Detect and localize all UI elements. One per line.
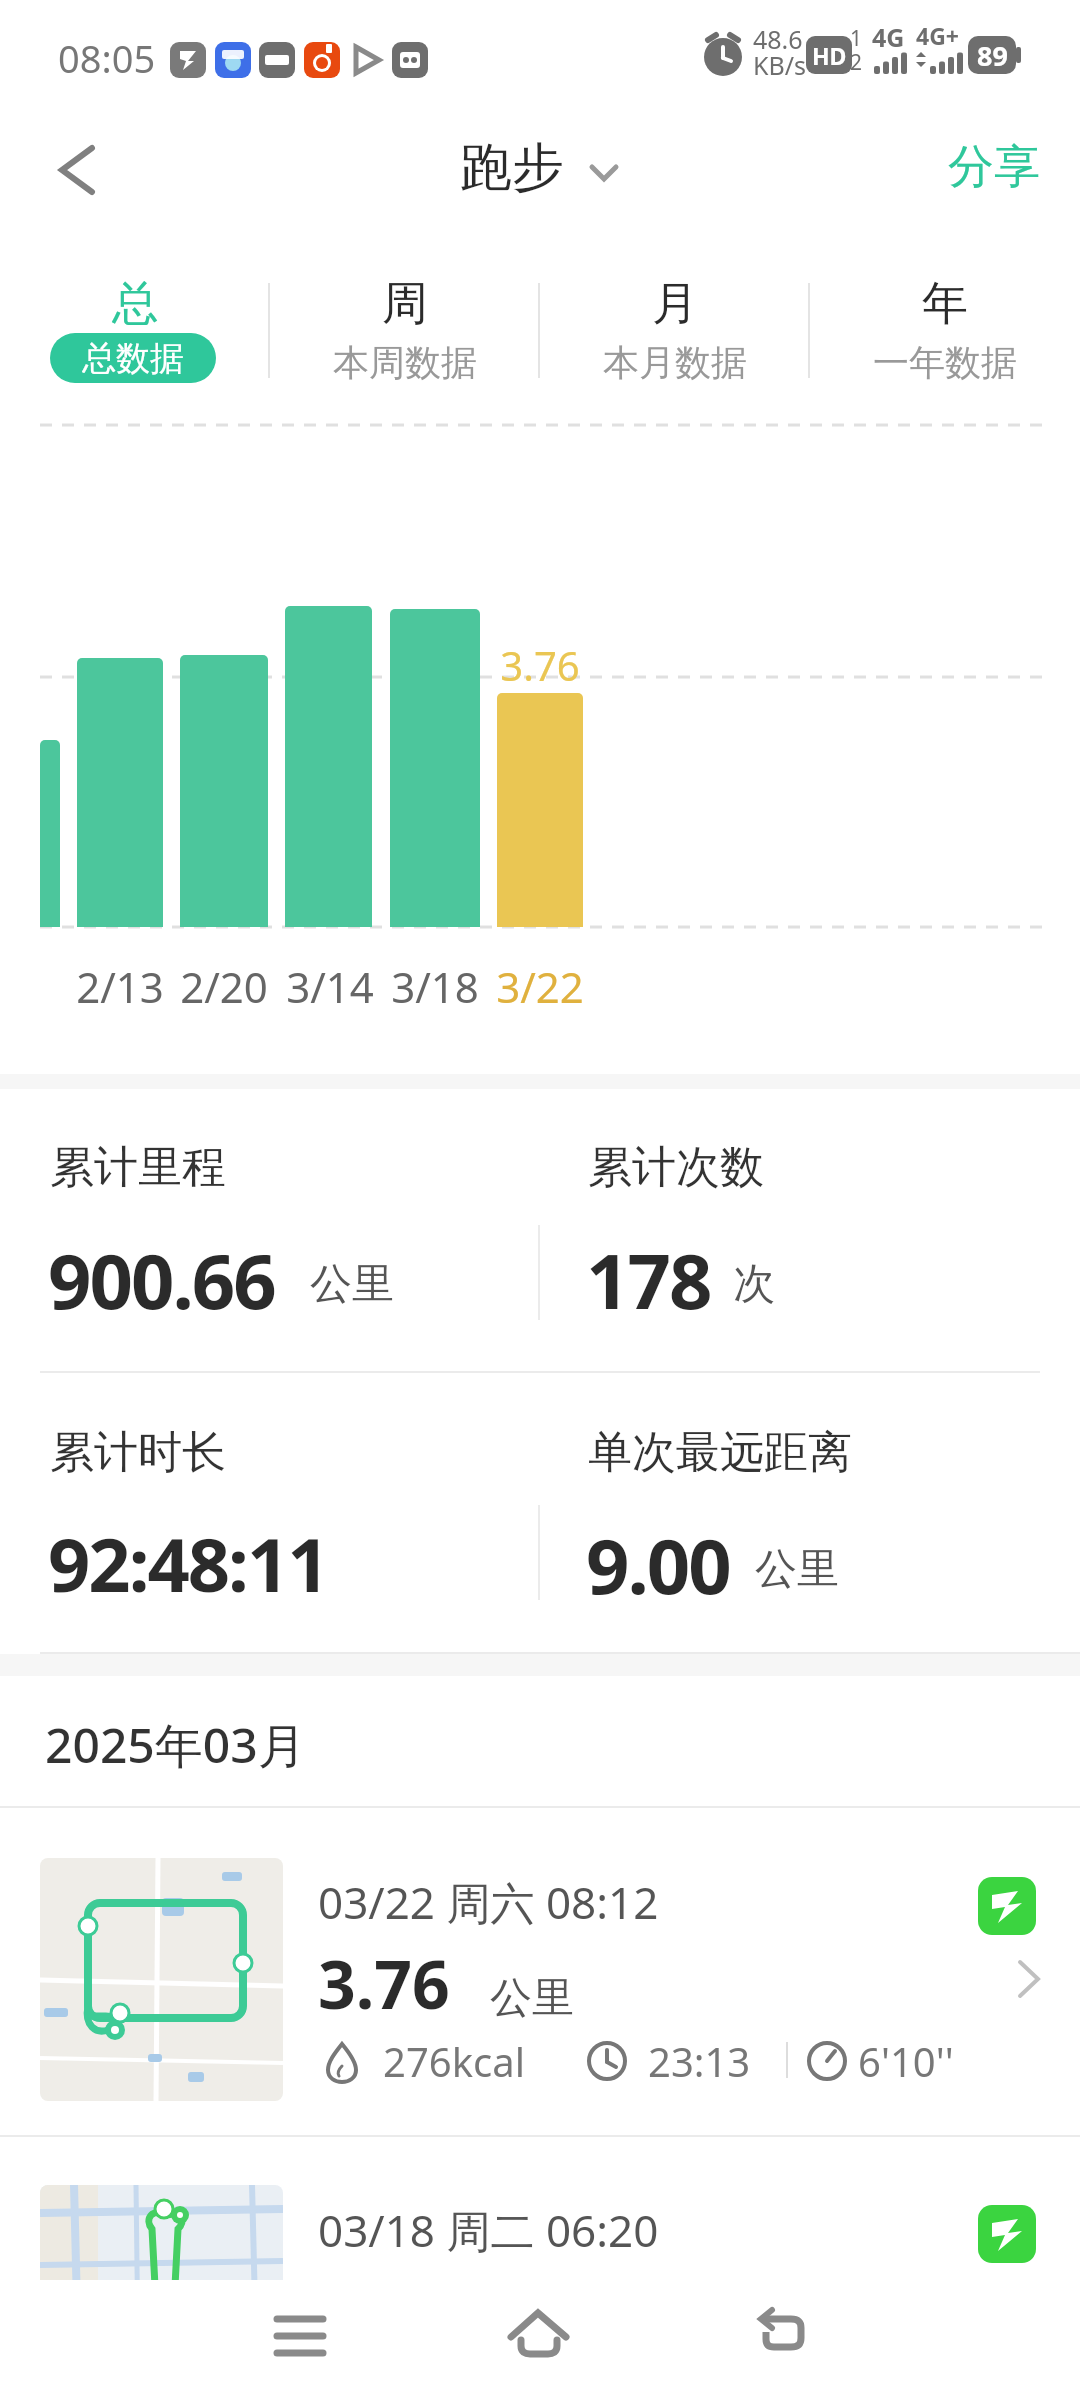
button[interactable]: 年: [840, 270, 1050, 390]
staticText: 3/22: [496, 958, 584, 1015]
button[interactable]: [492, 2290, 588, 2386]
staticText: 178: [586, 1228, 711, 1332]
button[interactable]: [0, 1808, 1080, 2137]
staticText: 本月数据: [603, 340, 747, 385]
staticText: 92:48:11: [48, 1513, 328, 1614]
staticText: 4G: [872, 20, 905, 54]
staticText: 2/13: [76, 958, 164, 1015]
staticText: 总数据: [82, 337, 184, 380]
staticText: 23:13: [648, 2034, 751, 2088]
staticText: 累计里程: [50, 1140, 226, 1195]
staticText: 公里: [310, 1258, 394, 1311]
staticText: 48.6: [753, 22, 803, 56]
staticText: 3/18: [391, 958, 479, 1015]
staticText: 总: [112, 275, 158, 333]
staticText: 3/14: [286, 958, 374, 1015]
staticText: 次: [733, 1258, 775, 1311]
staticText: 周: [382, 275, 428, 333]
staticText: KB/s: [753, 48, 807, 82]
staticText: 累计次数: [588, 1140, 764, 1195]
staticText: 2/20: [180, 958, 268, 1015]
staticText: 公里: [490, 1972, 574, 2025]
staticText: 03/18 周二 06:20: [318, 2200, 659, 2260]
staticText: 单次最远距离: [588, 1425, 852, 1480]
staticText: 2025年03月: [45, 1712, 306, 1778]
button[interactable]: 分享: [940, 138, 1050, 202]
staticText: 2: [850, 48, 863, 77]
button[interactable]: [734, 2290, 830, 2386]
staticText: 3.76: [500, 638, 580, 692]
staticText: 9.00: [586, 1513, 730, 1617]
staticText: 累计时长: [50, 1425, 226, 1480]
staticText: 03/22 周六 08:12: [318, 1872, 659, 1932]
button[interactable]: 总: [30, 270, 240, 390]
staticText: 公里: [755, 1543, 839, 1596]
staticText: 1: [850, 24, 863, 53]
staticText: 本周数据: [333, 340, 477, 385]
staticText: 月: [652, 275, 698, 333]
staticText: 一年数据: [873, 340, 1017, 385]
button[interactable]: [252, 2290, 348, 2386]
staticText: 年: [922, 275, 968, 333]
button[interactable]: 跑步: [430, 135, 650, 210]
staticText: 276kcal: [383, 2034, 525, 2088]
staticText: 3.76: [318, 1938, 450, 2028]
staticText: HD: [812, 40, 847, 71]
staticText: 4G+: [916, 20, 959, 51]
staticText: 跑步: [460, 135, 564, 201]
button[interactable]: 月: [570, 270, 780, 390]
staticText: 89: [977, 37, 1008, 74]
staticText: 分享: [948, 138, 1040, 196]
button[interactable]: [40, 130, 120, 210]
staticText: 900.66: [48, 1228, 275, 1332]
staticText: 6'10'': [858, 2034, 954, 2088]
button[interactable]: [0, 2137, 1080, 2280]
button[interactable]: 周: [300, 270, 510, 390]
staticText: 08:05: [58, 32, 156, 84]
